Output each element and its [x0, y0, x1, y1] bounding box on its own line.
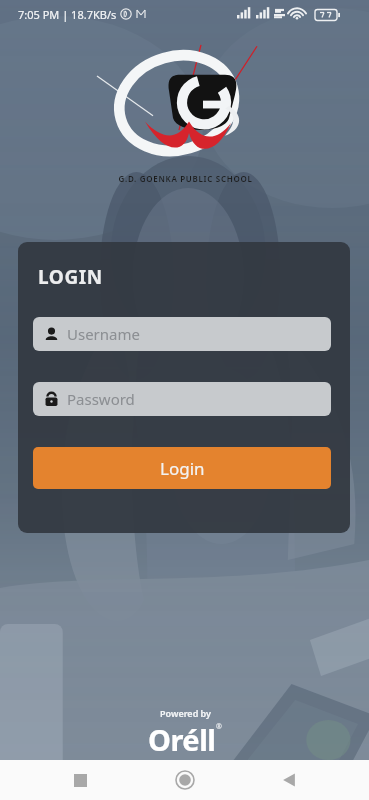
button[interactable]: Login	[33, 447, 331, 489]
staticText: Login	[160, 457, 205, 480]
staticText: G.D. GOENKA PUBLIC SCHOOL	[118, 173, 253, 184]
staticText: Oréll	[148, 720, 216, 759]
button[interactable]: Recent apps	[56, 760, 104, 800]
staticText: Password	[67, 389, 135, 409]
button[interactable]: Back	[265, 760, 313, 800]
staticText: Username	[67, 324, 140, 344]
staticText: LOGIN	[38, 264, 103, 290]
staticText: 7:05 PM | 18.7KB/s	[18, 7, 117, 22]
staticText: Powered by	[160, 707, 211, 719]
button[interactable]: Home	[161, 760, 209, 800]
button[interactable]: Username	[33, 317, 331, 351]
staticText: ®	[216, 722, 222, 732]
button[interactable]: Password	[33, 382, 331, 416]
